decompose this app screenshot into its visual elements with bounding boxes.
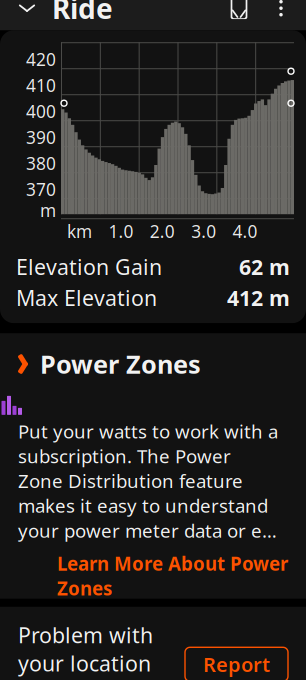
button[interactable]: Report bbox=[185, 647, 288, 680]
staticText: 4.0 bbox=[233, 220, 258, 243]
button[interactable]: More options bbox=[266, 0, 296, 25]
staticText: 2.0 bbox=[150, 220, 175, 243]
staticText: 1.0 bbox=[108, 220, 133, 243]
button[interactable]: Learn More About Power Zones bbox=[0, 559, 306, 593]
staticText: 370 bbox=[26, 178, 56, 201]
staticText: 390 bbox=[26, 126, 56, 149]
staticText: Learn More About Power Zones bbox=[57, 551, 288, 601]
staticText: Report bbox=[203, 651, 270, 678]
staticText: 62 m bbox=[239, 252, 290, 281]
staticText: 420 bbox=[26, 48, 56, 71]
staticText: Put your watts to work with a subscripti… bbox=[18, 419, 278, 543]
staticText: 410 bbox=[26, 74, 56, 97]
staticText: 400 bbox=[26, 100, 56, 123]
staticText: Problem with your location bbox=[18, 621, 153, 677]
staticText: Power Zones bbox=[40, 347, 201, 381]
button[interactable]: Save bbox=[222, 0, 256, 25]
staticText: Ride bbox=[52, 0, 113, 27]
staticText: 380 bbox=[26, 152, 56, 175]
button[interactable]: Close bbox=[10, 0, 44, 25]
staticText: Max Elevation bbox=[16, 283, 157, 312]
staticText: m bbox=[40, 199, 56, 222]
staticText: 3.0 bbox=[191, 220, 216, 243]
staticText: 412 m bbox=[227, 283, 290, 312]
staticText: Elevation Gain bbox=[16, 252, 162, 281]
staticText: km bbox=[67, 220, 92, 243]
